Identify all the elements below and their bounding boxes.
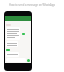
button[interactable] bbox=[6, 52, 19, 57]
button[interactable] bbox=[6, 49, 10, 51]
button[interactable]: Send bbox=[27, 59, 30, 62]
staticText: How to send a message on WhatsApp bbox=[9, 3, 55, 7]
button[interactable] bbox=[22, 33, 25, 35]
button[interactable] bbox=[6, 27, 20, 40]
button[interactable] bbox=[6, 41, 18, 47]
